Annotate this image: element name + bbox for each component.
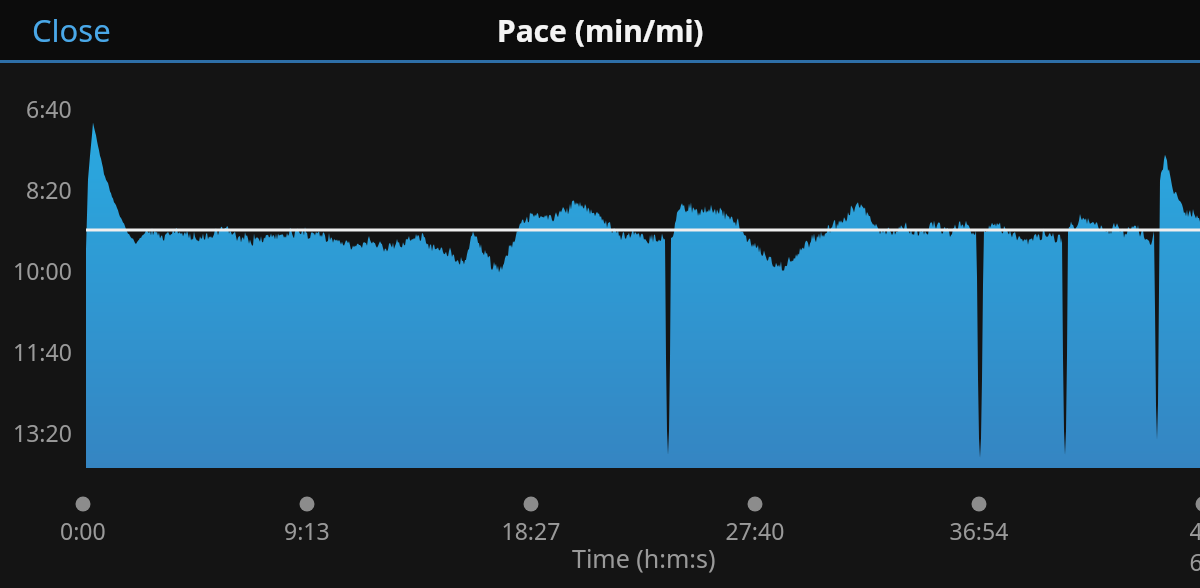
staticText: Pace (min/mi) xyxy=(497,10,704,51)
staticText: Close xyxy=(32,9,111,51)
button[interactable]: Close xyxy=(22,3,121,57)
